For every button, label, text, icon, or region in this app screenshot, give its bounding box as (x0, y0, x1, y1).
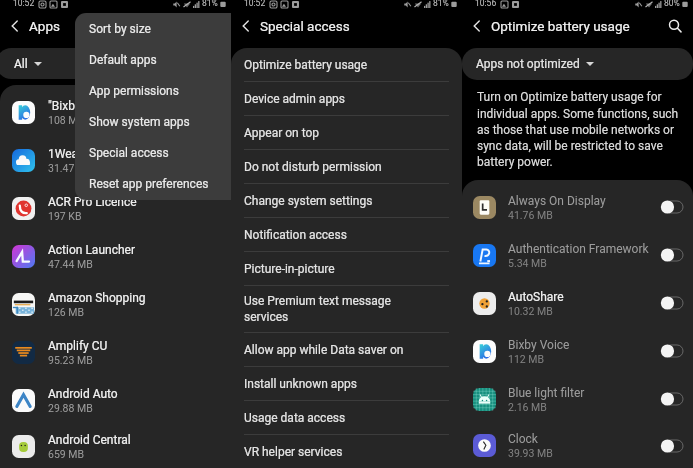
staticText: Use Premium text message services (244, 294, 391, 324)
staticText: 41.76 MB (508, 209, 553, 221)
staticText: Allow app while Data saver on (244, 343, 404, 357)
button[interactable]: "Bixb (0, 88, 231, 136)
staticText: 1Wea (48, 147, 79, 161)
staticText: Amplify CU (48, 339, 108, 353)
staticText: 659 MB (48, 448, 85, 460)
staticText: Picture-in-picture (244, 262, 335, 276)
button[interactable]: Install unknown apps (231, 367, 462, 400)
button[interactable]: Reset app preferences (75, 168, 306, 199)
button[interactable]: 1Wea (0, 136, 231, 184)
button[interactable]: Use Premium text message services (231, 286, 462, 332)
button[interactable]: App permissions (75, 75, 306, 106)
button[interactable]: Search (665, 16, 685, 36)
staticText: 31.47 (48, 162, 75, 174)
button[interactable]: ACR Pro Licence (0, 184, 231, 232)
button[interactable]: Toggle off (660, 439, 683, 453)
button[interactable]: Picture-in-picture (231, 252, 462, 285)
button[interactable]: Clock (462, 423, 693, 468)
button[interactable]: Always On Display (462, 183, 693, 231)
staticText: All (14, 57, 28, 71)
staticText: 5.34 MB (508, 257, 547, 269)
staticText: 10:52 (244, 0, 266, 8)
staticText: Appear on top (244, 126, 320, 140)
button[interactable]: Toggle off (660, 248, 683, 262)
button[interactable]: VR helper services (231, 435, 462, 468)
staticText: Special access (260, 18, 350, 34)
button[interactable]: Allow app while Data saver on (231, 333, 462, 366)
staticText: Sort by size (89, 22, 151, 36)
staticText: Reset app preferences (89, 177, 209, 191)
staticText: 2.16 MB (508, 401, 547, 413)
staticText: ACR Pro Licence (48, 195, 137, 209)
staticText: "Bixb (48, 99, 75, 113)
staticText: Bixby Voice (508, 338, 570, 352)
staticText: Install unknown apps (244, 377, 357, 391)
staticText: 197 KB (48, 210, 82, 222)
staticText: 47.44 MB (48, 258, 93, 270)
button[interactable]: Sort by size (75, 13, 306, 44)
staticText: Change system settings (244, 194, 373, 208)
staticText: VR helper services (244, 445, 343, 459)
button[interactable]: Default apps (75, 44, 306, 75)
staticText: 126 MB (48, 306, 85, 318)
staticText: Device admin apps (244, 92, 346, 106)
staticText: Usage data access (244, 411, 346, 425)
button[interactable]: Usage data access (231, 401, 462, 434)
staticText: 81% (433, 0, 449, 8)
staticText: 112 MB (508, 353, 545, 365)
button[interactable]: Apps not optimized (462, 48, 693, 80)
button[interactable]: Authentication Framework (462, 231, 693, 279)
staticText: Optimize battery usage (491, 18, 630, 34)
button[interactable]: Back (467, 16, 487, 36)
button[interactable]: Special access (75, 137, 306, 168)
staticText: 39.93 MB (508, 447, 553, 459)
button[interactable]: Change system settings (231, 184, 462, 217)
staticText: 95.23 MB (48, 354, 93, 366)
staticText: Authentication Framework (508, 242, 649, 256)
button[interactable]: Do not disturb permission (231, 150, 462, 183)
button[interactable]: Action Launcher (0, 232, 231, 280)
staticText: 10:52 (13, 0, 35, 8)
staticText: Do not disturb permission (244, 160, 382, 174)
staticText: 10:56 (475, 0, 497, 8)
staticText: Turn on Optimize battery usage for indiv… (477, 90, 685, 169)
button[interactable]: Amazon Shopping (0, 280, 231, 328)
staticText: Optimize battery usage (244, 58, 368, 72)
button[interactable]: Toggle off (660, 392, 683, 406)
staticText: 80% (664, 0, 680, 8)
button[interactable]: Toggle off (660, 344, 683, 358)
staticText: Clock (508, 432, 538, 446)
staticText: Show system apps (89, 115, 190, 129)
button[interactable]: Back (5, 16, 25, 36)
button[interactable]: Toggle off (660, 200, 683, 214)
staticText: Action Launcher (48, 243, 135, 257)
button[interactable]: Notification access (231, 218, 462, 251)
staticText: Always On Display (508, 194, 606, 208)
staticText: Android Auto (48, 387, 118, 401)
button[interactable]: All (0, 48, 181, 79)
staticText: Notification access (244, 228, 347, 242)
button[interactable]: Device admin apps (231, 82, 462, 115)
button[interactable]: Show system apps (75, 106, 306, 137)
staticText: 108 M (48, 114, 78, 126)
button[interactable]: Amplify CU (0, 328, 231, 376)
staticText: 29.88 MB (48, 402, 93, 414)
button[interactable]: Back (236, 16, 256, 36)
button[interactable]: Optimize battery usage (231, 48, 462, 81)
button[interactable]: Android Central (0, 424, 231, 468)
button[interactable]: Blue light filter (462, 375, 693, 423)
button[interactable]: Toggle off (660, 296, 683, 310)
staticText: Amazon Shopping (48, 291, 146, 305)
staticText: AutoShare (508, 290, 564, 304)
button[interactable]: Android Auto (0, 376, 231, 424)
staticText: 81% (202, 0, 218, 8)
staticText: 10.32 MB (508, 305, 553, 317)
button[interactable]: Appear on top (231, 116, 462, 149)
staticText: Special access (89, 146, 169, 160)
button[interactable]: AutoShare (462, 279, 693, 327)
staticText: Apps not optimized (476, 57, 580, 71)
staticText: App permissions (89, 84, 179, 98)
staticText: Apps (29, 18, 60, 34)
button[interactable]: Bixby Voice (462, 327, 693, 375)
staticText: Default apps (89, 53, 157, 67)
